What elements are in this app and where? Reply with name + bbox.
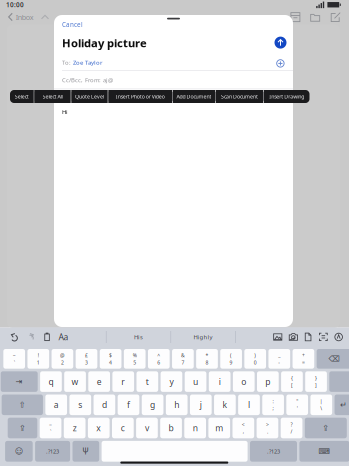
staticText: z: [73, 422, 77, 434]
staticText: k: [222, 399, 227, 410]
button[interactable]: n: [184, 418, 206, 438]
button[interactable]: l: [238, 394, 260, 415]
button[interactable]: (: [220, 349, 242, 369]
button[interactable]: Take photo: [289, 333, 298, 341]
button[interactable]: [102, 441, 248, 462]
button[interactable]: Add recipient: [276, 59, 285, 68]
button[interactable]: ~: [40, 418, 61, 438]
button[interactable]: ⇧: [2, 394, 43, 415]
button[interactable]: j: [190, 394, 212, 415]
button[interactable]: y: [161, 371, 182, 392]
button[interactable]: ⇪: [8, 418, 37, 438]
button[interactable]: £: [76, 349, 97, 369]
button[interactable]: ⇥: [1, 371, 38, 392]
button[interactable]: ~: [3, 349, 25, 369]
button[interactable]: [329, 371, 349, 392]
button[interactable]: ?: [281, 418, 302, 438]
staticText: ⇪: [19, 423, 26, 433]
button[interactable]: Ψ: [72, 441, 99, 462]
button[interactable]: i: [209, 371, 230, 392]
staticText: -: [278, 359, 280, 366]
button[interactable]: >: [257, 418, 278, 438]
button[interactable]: |: [310, 394, 332, 415]
button[interactable]: ↵: [335, 394, 349, 415]
button[interactable]: }: [305, 371, 327, 392]
button[interactable]: Next message: [61, 14, 70, 20]
button[interactable]: z: [64, 418, 85, 438]
button[interactable]: .?123: [250, 441, 297, 462]
button[interactable]: Send: [272, 35, 288, 51]
button[interactable]: Add Document: [173, 90, 215, 103]
button[interactable]: u: [185, 371, 206, 392]
button[interactable]: !: [27, 349, 49, 369]
button[interactable]: Inbox: [8, 12, 34, 22]
button[interactable]: Insert Photo or Video: [108, 90, 172, 103]
button[interactable]: Insert Drawing: [264, 90, 310, 103]
button[interactable]: Paste: [44, 333, 50, 341]
button[interactable]: Select: [10, 90, 34, 103]
button[interactable]: w: [64, 371, 86, 392]
button[interactable]: ": [286, 394, 308, 415]
button[interactable]: p: [257, 371, 279, 392]
button[interactable]: Cancel: [62, 20, 88, 29]
button[interactable]: Previous message: [41, 14, 49, 20]
button[interactable]: s: [69, 394, 91, 415]
button[interactable]: q: [40, 371, 62, 392]
button[interactable]: o: [233, 371, 255, 392]
button[interactable]: Move to folder: [310, 12, 320, 22]
button[interactable]: _: [268, 349, 290, 369]
button[interactable]: Add document: [305, 333, 311, 341]
button[interactable]: r: [112, 371, 134, 392]
button[interactable]: Markup: [334, 333, 343, 341]
button[interactable]: *: [196, 349, 218, 369]
button[interactable]: ☺: [5, 441, 33, 462]
staticText: .: [267, 428, 268, 435]
button[interactable]: Highly: [171, 327, 235, 346]
button[interactable]: x: [88, 418, 110, 438]
button[interactable]: $: [100, 349, 121, 369]
button[interactable]: b: [160, 418, 182, 438]
staticText: ,: [243, 428, 244, 435]
button[interactable]: Quote Level: [71, 90, 108, 103]
button[interactable]: t: [136, 371, 158, 392]
button[interactable]: f: [118, 394, 139, 415]
button[interactable]: ⌫: [317, 349, 349, 369]
button[interactable]: .?123: [35, 441, 70, 462]
button[interactable]: His: [106, 327, 170, 346]
button[interactable]: a: [45, 394, 67, 415]
button[interactable]: %: [124, 349, 146, 369]
staticText: ": [296, 398, 298, 405]
staticText: s: [78, 399, 82, 410]
button[interactable]: Insert photo: [273, 333, 282, 341]
staticText: Ψ: [82, 446, 89, 457]
button[interactable]: Redo: [27, 333, 34, 341]
button[interactable]: h: [166, 394, 187, 415]
button[interactable]: Archive: [290, 12, 300, 22]
button[interactable]: Scan Document: [216, 90, 263, 103]
staticText: ^: [157, 352, 160, 359]
button[interactable]: g: [142, 394, 163, 415]
button[interactable]: k: [214, 394, 236, 415]
button[interactable]: @: [52, 349, 73, 369]
button[interactable]: Select All: [34, 90, 71, 103]
button[interactable]: c: [112, 418, 134, 438]
button[interactable]: ^: [148, 349, 170, 369]
button[interactable]: &: [172, 349, 194, 369]
button[interactable]: Scan document: [319, 333, 328, 341]
button[interactable]: m: [208, 418, 230, 438]
button[interactable]: ⇪: [305, 418, 347, 438]
button[interactable]: {: [281, 371, 303, 392]
button[interactable]: +: [293, 349, 314, 369]
button[interactable]: ⌨: [299, 441, 349, 462]
button[interactable]: :: [262, 394, 284, 415]
button[interactable]: Undo: [11, 333, 18, 341]
staticText: {: [291, 375, 293, 381]
button[interactable]: Text formatting: [58, 331, 68, 343]
button[interactable]: <: [232, 418, 254, 438]
button[interactable]: ): [244, 349, 266, 369]
staticText: Scan Document: [221, 93, 258, 100]
button[interactable]: v: [136, 418, 158, 438]
button[interactable]: e: [88, 371, 110, 392]
button[interactable]: Compose: [331, 12, 341, 22]
button[interactable]: d: [94, 394, 115, 415]
